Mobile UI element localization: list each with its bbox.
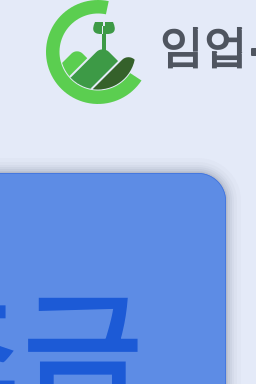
staticText: 임업 [159,20,247,74]
button[interactable]: 조금 [0,173,226,384]
staticText: 조금 [0,273,142,384]
